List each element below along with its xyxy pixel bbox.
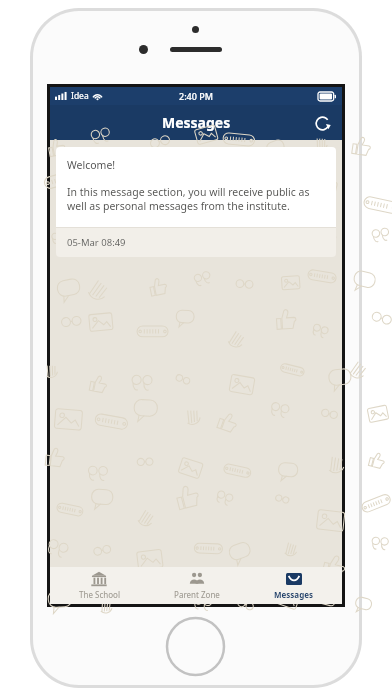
button[interactable]: The School [50, 567, 148, 604]
button[interactable]: Messages [245, 567, 342, 604]
staticText: In this message section, you will receiv… [67, 185, 325, 213]
staticText: 2:40 PM [179, 90, 213, 102]
staticText: 05-Mar 08:49 [67, 236, 126, 249]
button[interactable]: Welcome! [56, 147, 336, 257]
staticText: Welcome! [67, 158, 116, 172]
staticText: Messages [274, 589, 313, 600]
staticText: Parent Zone [174, 589, 220, 600]
staticText: Messages [162, 113, 231, 132]
staticText: The School [79, 589, 120, 600]
button[interactable]: Parent Zone [148, 567, 245, 604]
staticText: Idea [71, 90, 89, 102]
button[interactable]: Refresh [309, 110, 335, 136]
